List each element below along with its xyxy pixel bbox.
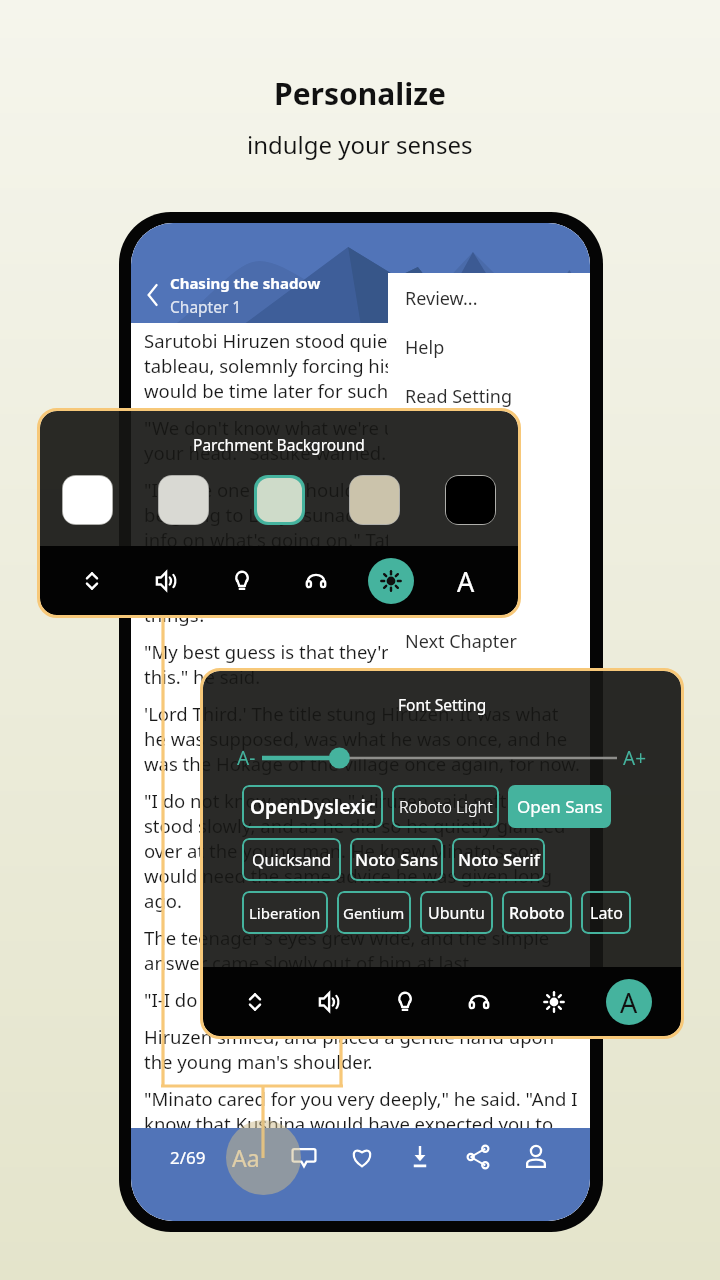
button[interactable]: Font size (262, 745, 617, 771)
button[interactable]: Scroll mode (69, 558, 115, 604)
button[interactable]: Review... (405, 273, 590, 323)
button[interactable]: Share (449, 1129, 507, 1185)
staticText: Help (405, 335, 445, 360)
button[interactable]: Noto Serif (452, 838, 545, 881)
button[interactable]: Volume (144, 558, 190, 604)
staticText: indulge your senses (247, 128, 473, 161)
staticText: "Minato cared for you very deeply," he s… (144, 1086, 584, 1161)
staticText: OpenDyslexic (250, 794, 376, 820)
staticText: "My best guess is that they're the ones … (144, 639, 584, 689)
button[interactable]: Light (219, 558, 265, 604)
staticText: Read Setting (405, 384, 513, 409)
button[interactable]: Volume (307, 979, 353, 1025)
button[interactable]: Quicksand (242, 838, 341, 881)
button[interactable]: Background colour (63, 476, 112, 524)
staticText: Quicksand (252, 849, 332, 871)
button[interactable]: Noto Sans (350, 838, 443, 881)
button[interactable]: Ubuntu (420, 891, 493, 934)
staticText: A (457, 563, 475, 600)
button[interactable]: Help (405, 323, 590, 372)
staticText: Noto Sans (355, 848, 438, 871)
button[interactable]: Background colour (350, 476, 399, 524)
staticText: Lato (590, 902, 623, 924)
staticText: Next Chapter (405, 629, 517, 654)
staticText: Font Setting (398, 694, 487, 715)
button[interactable]: Gentium (337, 891, 411, 934)
button[interactable]: Next Chapter (405, 617, 590, 665)
button[interactable]: Roboto Light (392, 785, 499, 828)
button[interactable]: Liberation (242, 891, 328, 934)
staticText: "I-I do not know what I should say, Lord… (144, 987, 573, 1012)
staticText: Parchment Background (193, 434, 365, 455)
staticText: Hiruzen smiled, and placed a gentle hand… (144, 1024, 584, 1074)
button[interactable]: Font (443, 558, 489, 604)
button[interactable]: Favorite (333, 1129, 391, 1185)
staticText: A (620, 984, 638, 1021)
staticText: Review... (405, 286, 478, 311)
button[interactable]: Roboto (502, 891, 572, 934)
button[interactable]: Light (382, 979, 428, 1025)
button[interactable]: Open Sans (508, 785, 611, 828)
staticText: A+ (623, 745, 647, 771)
button[interactable]: Back (135, 278, 169, 312)
button[interactable]: Lato (581, 891, 631, 934)
staticText: Open Sans (517, 795, 603, 818)
staticText: 'Lord Third.' The title stung Hiruzen. I… (144, 701, 584, 776)
staticText: "I'm the one who should be telling you t… (144, 477, 584, 627)
staticText: Chapter 1 (170, 296, 242, 317)
staticText: "I do not know, my son." Hiruzen said so… (144, 788, 584, 913)
button[interactable]: 2/69 (159, 1129, 217, 1185)
staticText: Roboto Light (399, 796, 493, 818)
button[interactable]: Download (391, 1129, 449, 1185)
staticText: Noto Serif (458, 848, 540, 871)
staticText: The teenager's eyes grew wide, and the s… (144, 925, 584, 975)
button[interactable]: Profile (507, 1129, 565, 1185)
staticText: 2/69 (170, 1146, 206, 1169)
button[interactable]: Background colour (446, 476, 495, 524)
button[interactable]: Read Setting (405, 372, 590, 421)
button[interactable]: Scroll mode (232, 979, 278, 1025)
staticText: Roboto (509, 902, 565, 924)
button[interactable]: Audio (456, 979, 502, 1025)
staticText: Sarutobi Hiruzen stood quietly before th… (144, 328, 584, 403)
staticText: "We don't know what we're up against, do… (144, 415, 584, 465)
button[interactable]: Brightness (368, 558, 414, 604)
staticText: Ubuntu (428, 902, 485, 924)
button[interactable]: Brightness (531, 979, 577, 1025)
staticText: Liberation (249, 903, 321, 923)
staticText: A- (237, 745, 256, 771)
button[interactable]: Aa (217, 1129, 275, 1185)
staticText: Aa (232, 1142, 260, 1173)
button[interactable]: Audio (293, 558, 339, 604)
button[interactable]: Font (606, 979, 652, 1025)
staticText: Gentium (343, 903, 405, 923)
button[interactable]: Comments (275, 1129, 333, 1185)
button[interactable]: OpenDyslexic (242, 785, 383, 828)
button[interactable]: Background colour (257, 478, 302, 522)
staticText: Personalize (274, 73, 446, 114)
staticText: Chasing the shadow (170, 273, 321, 293)
button[interactable]: Background colour (159, 476, 208, 524)
